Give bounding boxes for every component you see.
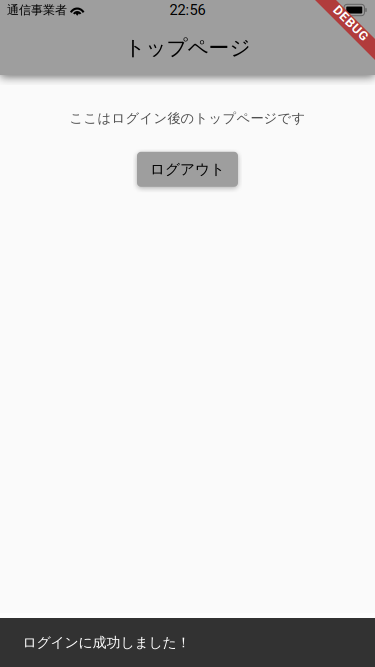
staticText: ログインに成功しました！ — [22, 634, 190, 651]
staticText: ログアウト — [150, 160, 225, 179]
staticText: DEBUG — [329, 15, 373, 31]
button[interactable]: ログアウト — [137, 152, 238, 187]
staticText: 22:56 — [169, 1, 205, 19]
staticText: 通信事業者 — [7, 2, 67, 17]
button[interactable]: ログインに成功しました！ — [0, 618, 375, 667]
staticText: トップページ — [124, 35, 250, 61]
staticText: ここはログイン後のトップページです — [69, 110, 305, 127]
